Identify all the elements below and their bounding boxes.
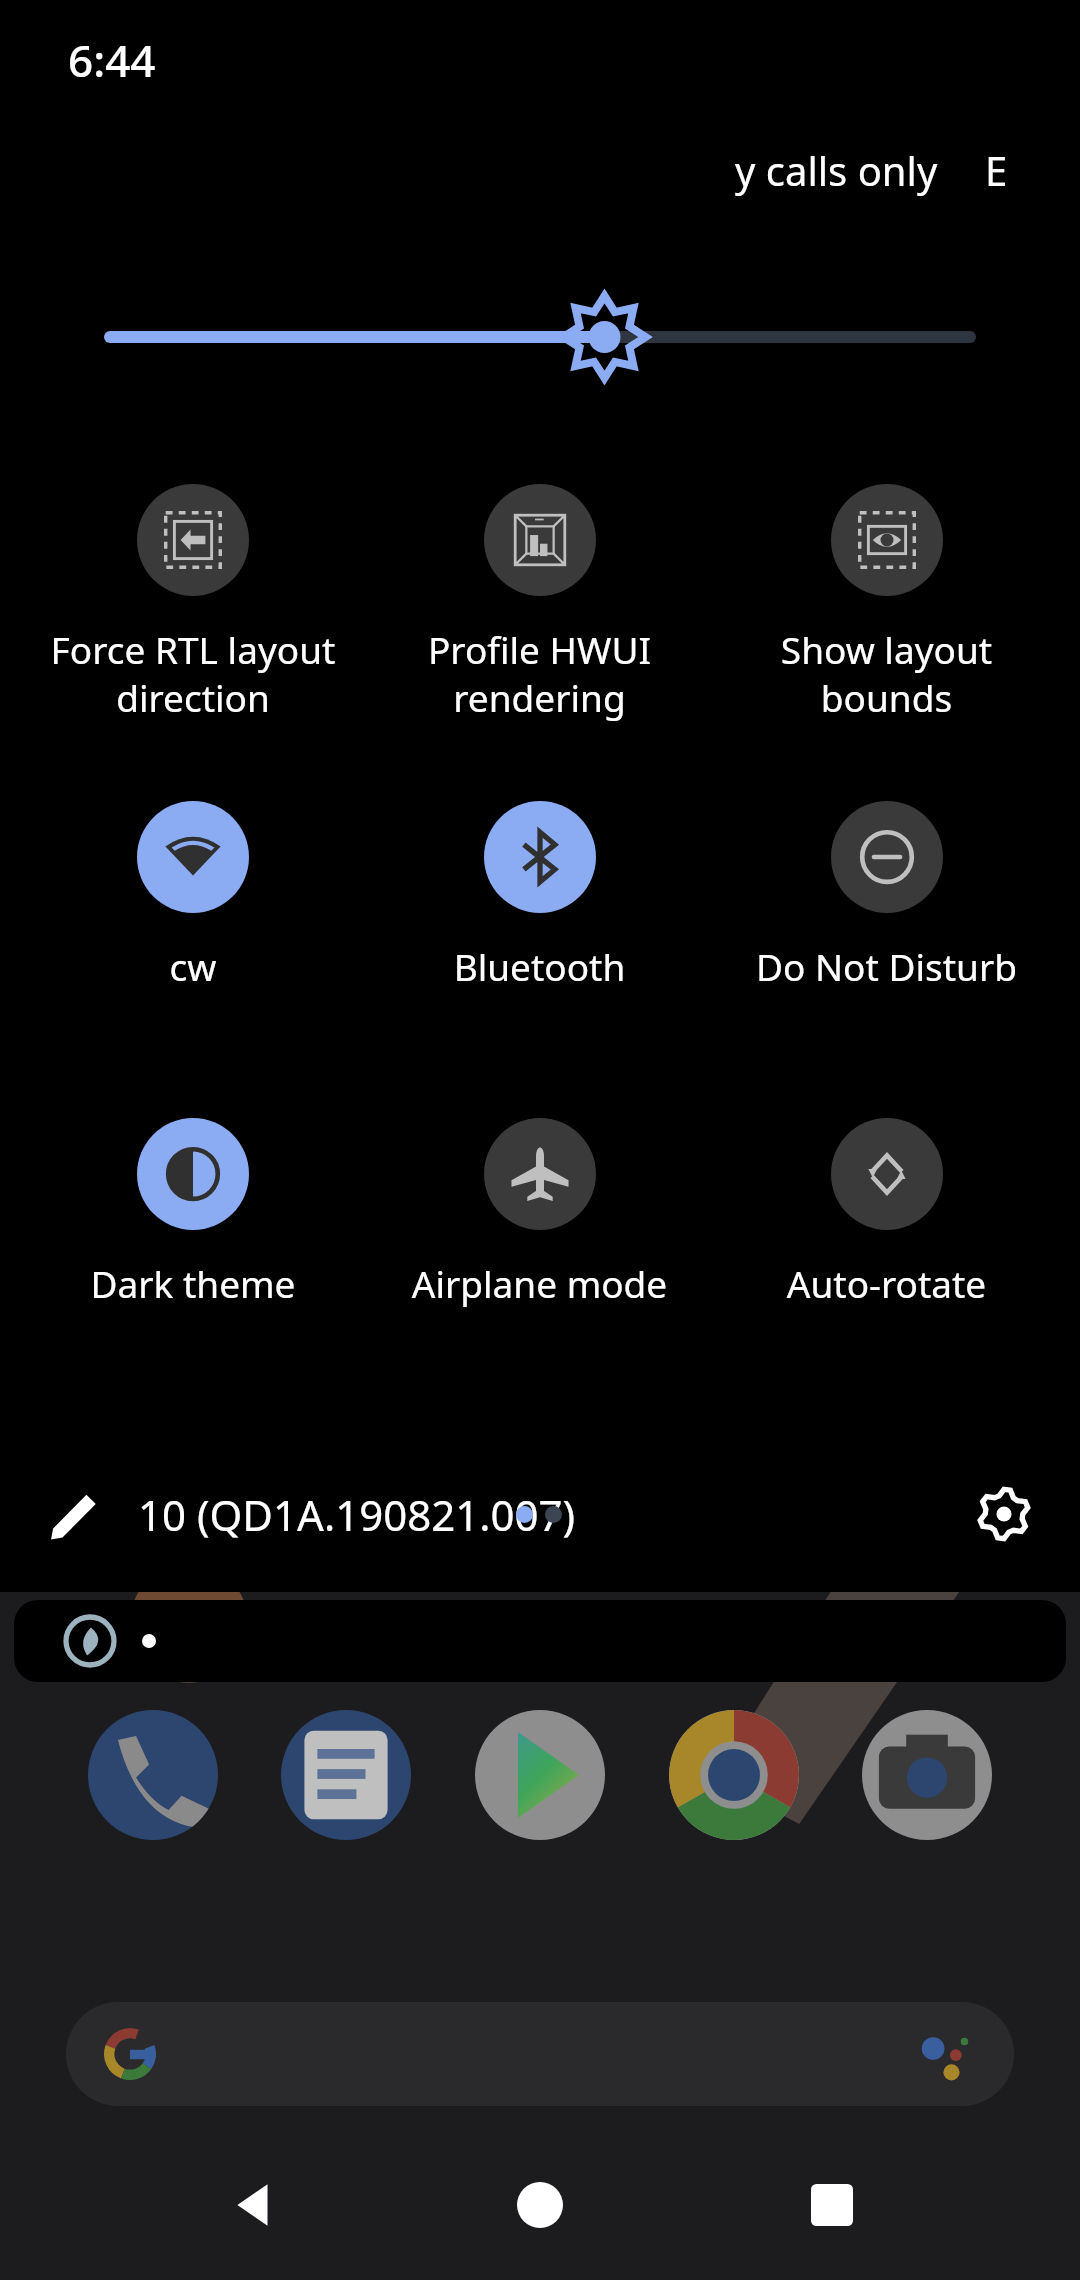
button[interactable]: App (475, 1710, 605, 1840)
staticText: Dark theme (20, 1258, 366, 1308)
button[interactable]: Brightness (0, 282, 1080, 392)
button[interactable]: Home (492, 2157, 588, 2253)
button[interactable]: Force RTL layout direction (20, 484, 366, 723)
button[interactable]: App icon (14, 1600, 1066, 1682)
button[interactable]: Profile HWUI rendering (366, 484, 713, 723)
staticText: Do Not Disturb (713, 941, 1060, 991)
staticText: Auto-rotate (713, 1258, 1060, 1308)
button[interactable]: Airplane mode (366, 1118, 713, 1357)
staticText: y calls only (735, 143, 938, 197)
staticText: 6:44 (68, 30, 156, 90)
button[interactable]: Search (66, 2002, 1014, 2106)
button[interactable]: App (281, 1710, 411, 1840)
button[interactable]: Recents (784, 2157, 880, 2253)
staticText: E (985, 143, 1008, 197)
staticText: Force RTL layout direction (20, 624, 366, 723)
staticText: 10 (QD1A.190821.007) (138, 1486, 576, 1543)
staticText: Show layout bounds (713, 624, 1060, 723)
staticText: Airplane mode (366, 1258, 713, 1308)
button[interactable]: App (862, 1710, 992, 1840)
button[interactable]: Do Not Disturb (713, 801, 1060, 1040)
button[interactable]: cw (20, 801, 366, 1040)
staticText: cw (20, 941, 366, 991)
button[interactable]: Dark theme (20, 1118, 366, 1357)
button[interactable]: Back (206, 2157, 302, 2253)
button[interactable]: App (88, 1710, 218, 1840)
button[interactable]: Show layout bounds (713, 484, 1060, 723)
button[interactable]: App (669, 1710, 799, 1840)
staticText: Bluetooth (366, 941, 713, 991)
button[interactable]: Auto-rotate (713, 1118, 1060, 1357)
other: App icon (66, 1617, 114, 1665)
button[interactable]: Edit tiles (38, 1476, 114, 1552)
button[interactable]: Settings (962, 1472, 1046, 1556)
staticText: Profile HWUI rendering (366, 624, 713, 723)
button[interactable]: Bluetooth (366, 801, 713, 1040)
